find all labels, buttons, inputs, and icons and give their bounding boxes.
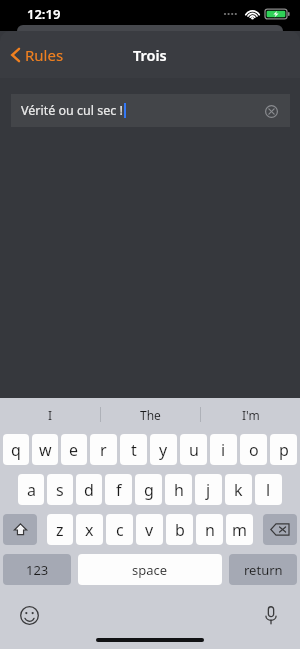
button[interactable]: Shift — [3, 514, 37, 545]
button[interactable]: p — [270, 434, 297, 465]
button[interactable]: b — [166, 514, 193, 545]
staticText: t — [131, 439, 137, 461]
button[interactable]: Clear text — [260, 100, 282, 122]
button[interactable]: 123 — [3, 554, 71, 585]
staticText: o — [249, 439, 259, 461]
staticText: p — [279, 439, 289, 461]
button[interactable]: Backspace — [263, 514, 297, 545]
button[interactable]: w — [32, 434, 58, 465]
staticText: k — [234, 479, 243, 501]
staticText: z — [56, 519, 64, 541]
staticText: u — [189, 439, 199, 461]
staticText: I — [48, 407, 53, 423]
staticText: a — [27, 479, 36, 501]
button[interactable]: s — [47, 474, 73, 505]
button[interactable]: space — [78, 554, 222, 585]
button[interactable]: Vérité ou cul sec ! — [11, 94, 290, 127]
button[interactable]: k — [225, 474, 252, 505]
staticText: space — [132, 561, 168, 579]
staticText: d — [84, 479, 94, 501]
staticText: I'm — [242, 407, 260, 423]
staticText: f — [116, 479, 122, 501]
staticText: h — [174, 479, 184, 501]
staticText: l — [266, 479, 271, 501]
button[interactable]: y — [150, 434, 177, 465]
staticText: return — [244, 561, 283, 579]
staticText: y — [159, 439, 168, 461]
button[interactable]: u — [180, 434, 207, 465]
button[interactable]: x — [76, 514, 103, 545]
staticText: 12:19 — [27, 5, 61, 23]
button[interactable]: z — [47, 514, 73, 545]
staticText: x — [85, 519, 94, 541]
button[interactable]: n — [196, 514, 223, 545]
button[interactable]: i — [210, 434, 237, 465]
button[interactable]: Rules — [8, 39, 66, 71]
button[interactable]: Emoji — [16, 602, 42, 628]
button[interactable]: r — [90, 434, 117, 465]
button[interactable]: d — [76, 474, 102, 505]
button[interactable]: f — [105, 474, 132, 505]
button[interactable]: t — [120, 434, 147, 465]
button[interactable]: I — [0, 398, 100, 431]
staticText: j — [206, 479, 211, 501]
staticText: 123 — [26, 561, 49, 579]
button[interactable]: l — [255, 474, 282, 505]
staticText: m — [232, 519, 247, 541]
staticText: s — [56, 479, 64, 501]
button[interactable]: return — [229, 554, 297, 585]
staticText: Trois — [133, 45, 167, 65]
staticText: g — [144, 479, 154, 501]
button[interactable]: Dictation — [258, 602, 284, 628]
button[interactable]: g — [135, 474, 162, 505]
staticText: i — [221, 439, 226, 461]
staticText: w — [39, 439, 52, 461]
button[interactable]: v — [136, 514, 163, 545]
button[interactable]: a — [18, 474, 44, 505]
staticText: c — [116, 519, 124, 541]
staticText: b — [175, 519, 185, 541]
staticText: Vérité ou cul sec ! — [21, 102, 123, 119]
button[interactable]: h — [165, 474, 192, 505]
button[interactable]: c — [106, 514, 133, 545]
staticText: The — [140, 407, 161, 423]
staticText: n — [205, 519, 215, 541]
staticText: e — [69, 439, 79, 461]
button[interactable]: m — [226, 514, 253, 545]
button[interactable]: o — [240, 434, 267, 465]
button[interactable]: I'm — [201, 398, 300, 431]
button[interactable]: q — [3, 434, 29, 465]
staticText: v — [145, 519, 154, 541]
staticText: r — [100, 439, 107, 461]
button[interactable]: e — [61, 434, 87, 465]
button[interactable]: The — [101, 398, 200, 431]
staticText: Rules — [25, 45, 64, 65]
staticText: q — [11, 439, 21, 461]
button[interactable]: j — [195, 474, 222, 505]
